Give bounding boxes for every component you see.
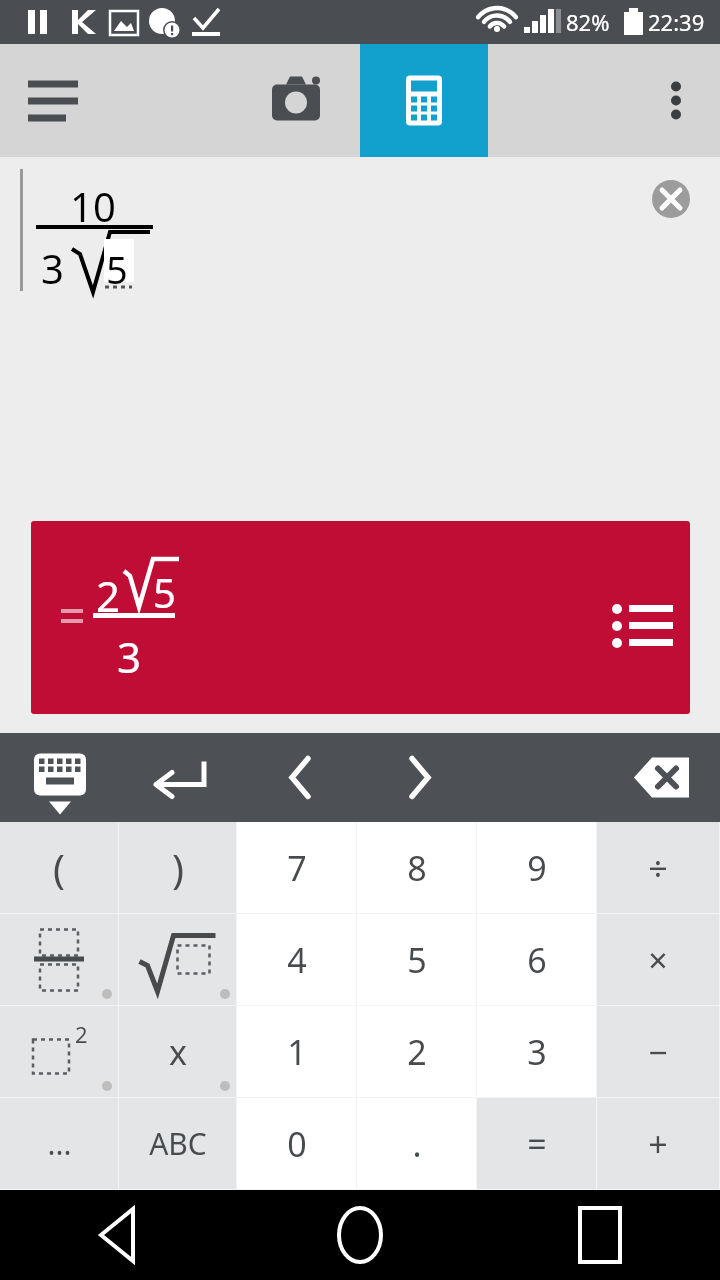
- staticText: ×: [648, 937, 668, 983]
- staticText: 10: [70, 179, 116, 233]
- button[interactable]: 9: [477, 822, 596, 913]
- staticText: .: [412, 1121, 422, 1167]
- button[interactable]: Enter: [135, 733, 225, 822]
- button[interactable]: 5: [357, 914, 476, 1005]
- button[interactable]: ÷: [597, 822, 719, 913]
- button[interactable]: 7: [237, 822, 356, 913]
- staticText: 2: [75, 1019, 88, 1049]
- staticText: 2: [96, 567, 121, 624]
- staticText: 5: [407, 937, 427, 983]
- button[interactable]: Home: [240, 1190, 480, 1280]
- button[interactable]: Hide keyboard: [14, 733, 106, 822]
- staticText: 3: [41, 241, 64, 295]
- button[interactable]: ): [119, 822, 236, 913]
- button[interactable]: ×: [597, 914, 719, 1005]
- staticText: =: [527, 1121, 547, 1167]
- staticText: 9: [527, 845, 547, 891]
- button[interactable]: Camera: [248, 44, 344, 157]
- button[interactable]: ...: [0, 1098, 118, 1189]
- button[interactable]: 3: [477, 1006, 596, 1097]
- staticText: 3: [117, 628, 142, 685]
- staticText: 5: [153, 565, 176, 619]
- button[interactable]: Square: [0, 1006, 118, 1097]
- staticText: 5: [106, 243, 128, 295]
- staticText: 7: [287, 845, 307, 891]
- staticText: 0: [287, 1121, 307, 1167]
- button[interactable]: Move left: [258, 733, 342, 822]
- button[interactable]: Square root: [119, 914, 236, 1005]
- staticText: (: [53, 841, 65, 895]
- staticText: 22:39: [648, 7, 705, 37]
- button[interactable]: More options: [632, 44, 720, 157]
- button[interactable]: 6: [477, 914, 596, 1005]
- staticText: 6: [527, 937, 547, 983]
- button[interactable]: 1: [237, 1006, 356, 1097]
- button[interactable]: (: [0, 822, 118, 913]
- staticText: ): [172, 841, 184, 895]
- button[interactable]: Calculator: [360, 44, 488, 157]
- button[interactable]: .: [357, 1098, 476, 1189]
- button[interactable]: 2: [31, 521, 690, 714]
- staticText: 82%: [566, 7, 610, 37]
- button[interactable]: x: [119, 1006, 236, 1097]
- staticText: +: [648, 1121, 668, 1167]
- button[interactable]: Back: [0, 1190, 240, 1280]
- staticText: −: [648, 1029, 668, 1075]
- button[interactable]: Fraction: [0, 914, 118, 1005]
- button[interactable]: =: [477, 1098, 596, 1189]
- button[interactable]: Menu: [0, 44, 100, 157]
- button[interactable]: Move right: [378, 733, 462, 822]
- staticText: 3: [527, 1029, 547, 1075]
- button[interactable]: Backspace: [618, 733, 706, 822]
- button[interactable]: 8: [357, 822, 476, 913]
- staticText: 2: [407, 1029, 427, 1075]
- staticText: 1: [287, 1029, 307, 1075]
- button[interactable]: Recent apps: [480, 1190, 720, 1280]
- button[interactable]: 0: [237, 1098, 356, 1189]
- button[interactable]: +: [597, 1098, 719, 1189]
- button[interactable]: Clear: [645, 173, 697, 225]
- staticText: ...: [47, 1123, 72, 1164]
- button[interactable]: 2: [357, 1006, 476, 1097]
- button[interactable]: −: [597, 1006, 719, 1097]
- staticText: 4: [287, 937, 307, 983]
- staticText: ÷: [648, 845, 668, 891]
- button[interactable]: ABC: [119, 1098, 236, 1189]
- staticText: x: [169, 1029, 187, 1075]
- staticText: ABC: [149, 1123, 207, 1164]
- button[interactable]: 4: [237, 914, 356, 1005]
- staticText: 8: [407, 845, 427, 891]
